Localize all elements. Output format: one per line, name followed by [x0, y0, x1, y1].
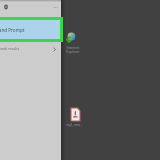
staticText: long1_raw...	[63, 122, 83, 127]
staticText: Internet Explorer	[62, 45, 84, 54]
button[interactable]: r web results	[0, 43, 61, 54]
button[interactable]: Account	[4, 5, 8, 9]
button[interactable]: More options	[53, 6, 58, 9]
button[interactable]: Internet Explorer	[62, 30, 84, 54]
staticText: nand Prompt	[0, 27, 25, 33]
button[interactable]: Document file	[62, 108, 82, 128]
button[interactable]: nand Prompt	[0, 20, 60, 39]
staticText: r web results	[0, 46, 20, 51]
